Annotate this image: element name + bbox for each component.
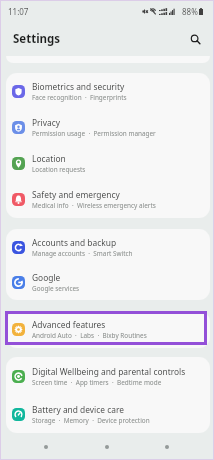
staticText: Battery and device care: [32, 404, 124, 415]
button[interactable]: Recents: [29, 434, 63, 459]
staticText: Safety and emergency: [32, 189, 120, 200]
staticText: Privacy: [32, 117, 60, 128]
button[interactable]: Battery and device care: [6, 395, 210, 433]
staticText: Digital Wellbeing and parental controls: [32, 366, 186, 377]
staticText: Google: [32, 272, 61, 283]
button[interactable]: Location: [6, 145, 210, 181]
staticText: Advanced features: [32, 319, 106, 330]
button[interactable]: Home: [90, 434, 124, 459]
staticText: Settings: [13, 31, 61, 47]
button[interactable]: Biometrics and security: [6, 73, 210, 109]
button[interactable]: Accounts and backup: [6, 229, 210, 265]
staticText: Accounts and backup: [32, 237, 117, 248]
staticText: Storage · Memory · Device protection: [32, 416, 150, 425]
button[interactable]: Safety and emergency: [6, 181, 210, 217]
staticText: 88%: [182, 6, 198, 17]
button[interactable]: Digital Wellbeing and parental controls: [6, 357, 210, 395]
button[interactable]: Search: [186, 30, 204, 48]
staticText: Permission usage · Permission manager: [32, 129, 156, 138]
staticText: 11:07: [8, 6, 29, 17]
staticText: Medical info · Wireless emergency alerts: [32, 201, 156, 210]
button[interactable]: Advanced features: [6, 311, 210, 348]
staticText: Location requests: [32, 165, 86, 174]
staticText: Biometrics and security: [32, 81, 125, 92]
button[interactable]: Privacy: [6, 109, 210, 145]
staticText: Manage accounts · Smart Switch: [32, 249, 133, 258]
staticText: Google services: [32, 284, 80, 293]
staticText: Location: [32, 153, 66, 164]
staticText: Screen time · App timers · Bedtime mode: [32, 378, 162, 387]
button[interactable]: Google: [6, 265, 210, 300]
staticText: Android Auto · Labs · Bixby Routines: [32, 331, 147, 340]
button[interactable]: Back: [150, 434, 184, 459]
staticText: Face recognition · Fingerprints: [32, 93, 127, 102]
